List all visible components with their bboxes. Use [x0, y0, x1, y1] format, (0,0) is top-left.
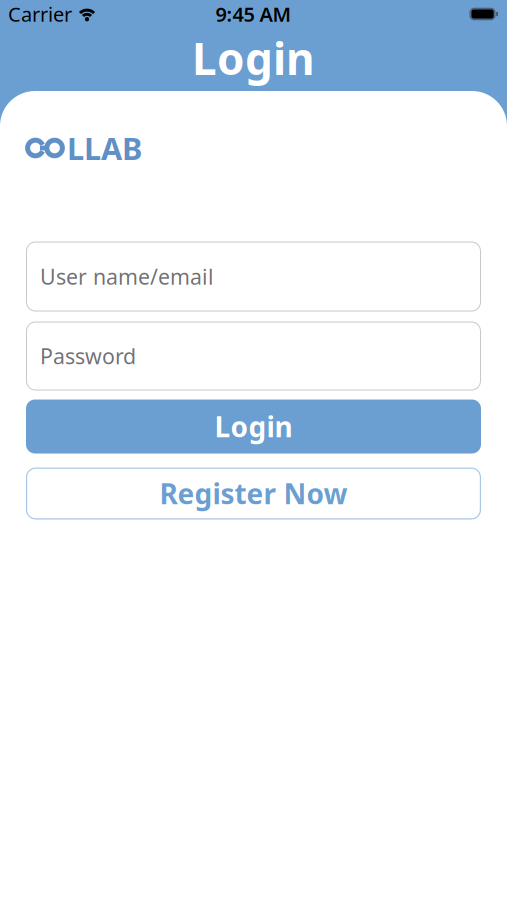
button[interactable]: Password: [26, 321, 481, 390]
staticText: 9:45 AM: [215, 1, 291, 27]
staticText: LLAB: [67, 128, 142, 168]
button[interactable]: Register Now: [26, 467, 481, 519]
staticText: Login: [214, 408, 292, 445]
staticText: Carrier: [8, 1, 72, 27]
staticText: Password: [40, 342, 136, 370]
button[interactable]: User name/email: [26, 241, 481, 311]
staticText: Login: [192, 29, 315, 87]
button[interactable]: Login: [26, 399, 481, 453]
staticText: User name/email: [40, 262, 214, 291]
staticText: Register Now: [159, 475, 347, 512]
